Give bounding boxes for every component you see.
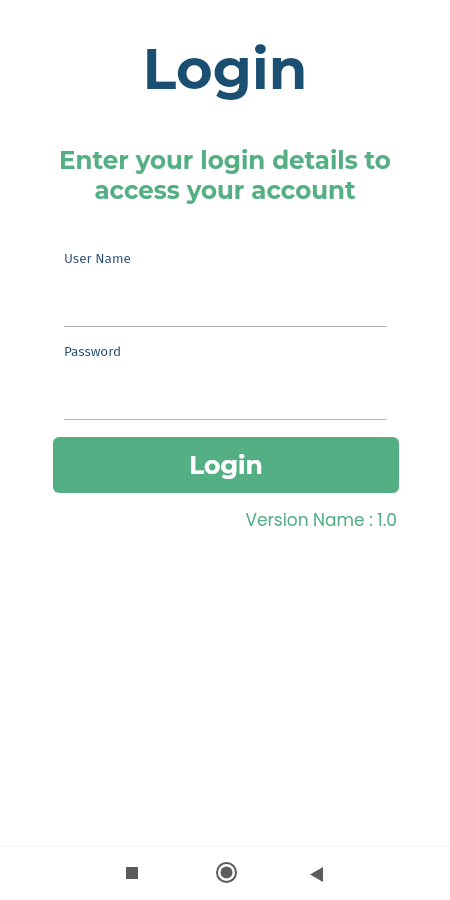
button[interactable]: User Name [64,250,387,327]
staticText: User Name [64,250,131,266]
button[interactable]: Password [64,343,387,420]
staticText: Password [64,343,122,359]
button[interactable]: Recent apps [108,849,156,897]
staticText: Enter your login details to access your … [44,145,406,205]
button[interactable]: Home [202,848,250,896]
staticText: Version Name : 1.0 [0,508,397,532]
staticText: Login [0,35,450,103]
button[interactable]: Login [53,437,399,493]
button[interactable]: Back [292,850,340,898]
staticText: Login [189,450,263,480]
